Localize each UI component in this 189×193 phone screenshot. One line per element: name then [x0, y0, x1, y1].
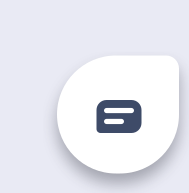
button[interactable]: [57, 55, 179, 173]
